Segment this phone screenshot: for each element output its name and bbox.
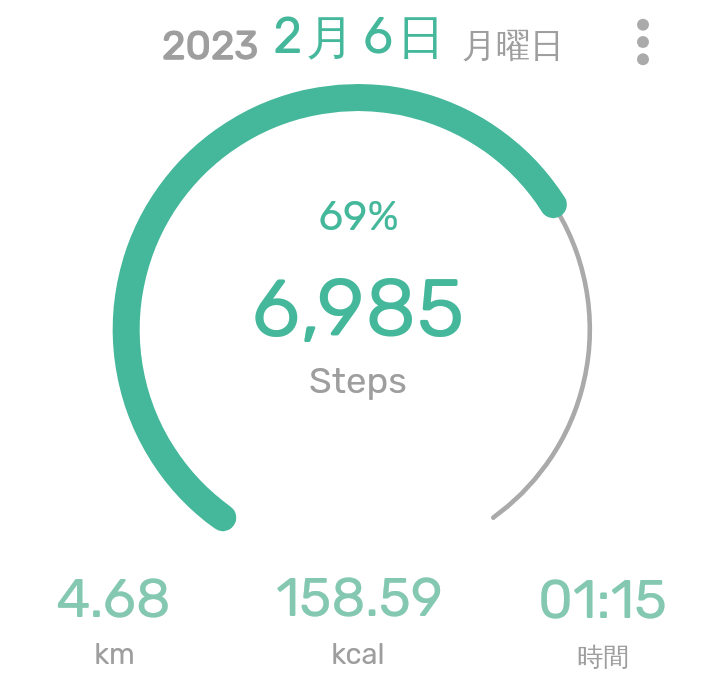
staticText: 月 xyxy=(306,8,354,68)
staticText: 4.68 xyxy=(56,566,171,631)
staticText: 158.59 xyxy=(276,566,443,630)
staticText: 月曜日 xyxy=(462,24,564,67)
staticText: kcal xyxy=(331,637,385,671)
staticText: 6 xyxy=(363,6,394,65)
staticText: 日 xyxy=(397,8,445,68)
button[interactable]: 158.59 kcal xyxy=(247,555,467,673)
button[interactable]: 2023年2月6日 月曜日 xyxy=(150,8,580,70)
staticText: km xyxy=(94,637,135,671)
button[interactable]: 6,985 Steps, 69% of goal xyxy=(218,180,498,410)
button[interactable]: More options xyxy=(617,16,669,68)
staticText: 6,985 xyxy=(251,260,465,356)
staticText: 時間 xyxy=(577,641,629,674)
staticText: 2023 xyxy=(162,22,259,69)
button[interactable]: 01:15 時間 xyxy=(493,555,713,673)
button[interactable]: 4.68 km xyxy=(2,555,222,673)
staticText: 2 xyxy=(273,6,303,65)
staticText: 01:15 xyxy=(538,567,667,632)
staticText: 69% xyxy=(318,192,399,241)
staticText: Steps xyxy=(309,359,407,402)
